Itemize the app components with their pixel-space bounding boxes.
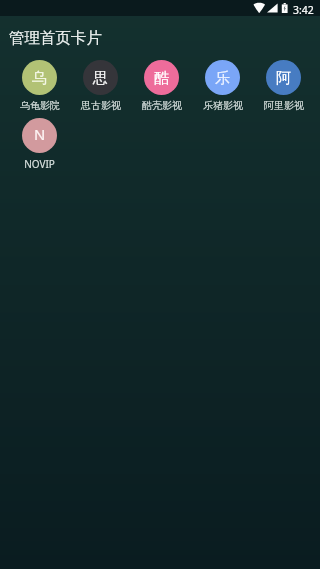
button[interactable]: 阿 [253,54,314,112]
staticText: 阿里影视 [264,99,304,112]
staticText: 阿 [276,69,291,88]
button[interactable]: 乐 [192,54,253,112]
button[interactable]: 思 [70,54,131,112]
staticText: 管理首页卡片 [9,28,102,48]
staticText: 酷 [154,69,169,88]
staticText: 思 [93,69,108,88]
staticText: 乐 [215,69,230,88]
staticText: NOVIP [24,157,55,171]
staticText: 3:42 [293,3,314,16]
button[interactable]: 酷 [131,54,192,112]
staticText: N [34,124,46,144]
button[interactable]: 乌 [9,54,70,112]
button[interactable]: N [9,112,70,171]
staticText: 乐猪影视 [203,99,243,112]
staticText: 乌 [32,69,47,88]
staticText: 乌龟影院 [20,99,60,112]
staticText: 酷壳影视 [142,99,182,112]
staticText: 思古影视 [81,99,121,112]
